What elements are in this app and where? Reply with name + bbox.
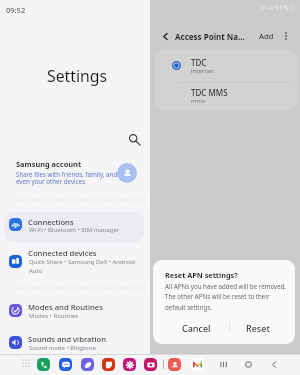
button[interactable]: All apps — [22, 359, 30, 367]
button[interactable]: TDC — [155, 49, 297, 81]
button[interactable]: Notes — [102, 358, 115, 371]
staticText: Share files with friends, family, and ev… — [16, 170, 118, 186]
button[interactable]: Search — [126, 131, 143, 148]
staticText: Add — [259, 31, 274, 41]
button[interactable]: Gmail — [191, 358, 204, 371]
button[interactable]: Cancel — [163, 317, 229, 339]
button[interactable]: TDC MMS — [155, 79, 297, 111]
staticText: Connected devices — [28, 248, 97, 258]
staticText: Modes • Routines — [29, 312, 79, 320]
button[interactable]: Back — [268, 358, 281, 371]
button[interactable] — [4, 330, 144, 360]
staticText: Wi-Fi • Bluetooth • SIM manager — [29, 226, 120, 234]
staticText: mms — [191, 97, 206, 105]
staticText: Access Point Na... — [175, 31, 245, 42]
button[interactable]: Add — [256, 28, 277, 44]
button[interactable]: Recent apps — [217, 358, 230, 371]
staticText: internet — [191, 67, 214, 75]
button[interactable]: Camera — [144, 358, 157, 371]
button[interactable]: Navigate back — [157, 28, 173, 44]
staticText: Modes and Routines — [28, 302, 104, 312]
button[interactable]: Samsung account — [0, 156, 150, 192]
staticText: TDC — [191, 57, 207, 68]
staticText: Cancel — [182, 322, 211, 334]
staticText: Settings — [47, 65, 108, 87]
button[interactable]: Home — [242, 358, 255, 371]
staticText: 51% — [275, 3, 289, 12]
staticText: Connections — [28, 217, 74, 227]
staticText: Reset — [246, 322, 270, 334]
button[interactable]: More options — [278, 28, 294, 44]
button[interactable]: Contacts — [168, 358, 181, 371]
staticText: 09:52 — [6, 5, 26, 15]
staticText: Sounds and vibration — [28, 334, 106, 344]
button[interactable]: Reset — [229, 317, 287, 339]
staticText: TDC MMS — [191, 87, 228, 98]
button[interactable]: Account profile — [117, 163, 137, 183]
button[interactable] — [4, 246, 144, 278]
staticText: Quick Share • Samsung DeX • Android Auto — [29, 258, 135, 274]
button[interactable] — [4, 298, 144, 328]
button[interactable]: Phone — [37, 358, 50, 371]
button[interactable]: Messages — [59, 358, 72, 371]
button[interactable]: Gallery — [123, 358, 136, 371]
button[interactable] — [4, 212, 144, 242]
staticText: All APNs you have added will be removed.… — [165, 282, 287, 312]
button[interactable]: Internet — [81, 358, 94, 371]
staticText: Sound mode • Ringtone — [29, 344, 96, 352]
staticText: Samsung account — [16, 159, 82, 169]
staticText: Reset APN settings? — [165, 270, 238, 280]
